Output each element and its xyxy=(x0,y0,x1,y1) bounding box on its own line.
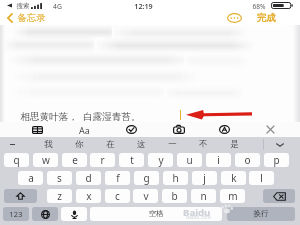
staticText: l xyxy=(260,171,263,185)
staticText: Aa xyxy=(79,124,90,136)
button[interactable]: p xyxy=(264,153,289,167)
button[interactable]: 我 xyxy=(34,137,62,152)
button[interactable]: t xyxy=(119,153,144,167)
button[interactable]: Expand candidates xyxy=(268,137,292,152)
staticText: 备忘录 xyxy=(17,12,46,24)
button[interactable]: 完成 xyxy=(256,11,277,25)
button[interactable]: Markup xyxy=(218,123,231,136)
button[interactable]: l xyxy=(249,171,274,185)
button[interactable]: v xyxy=(133,189,158,203)
button[interactable]: m xyxy=(220,189,245,203)
button[interactable]: Pinyin input xyxy=(6,137,18,152)
button[interactable]: More options xyxy=(226,12,242,24)
button[interactable]: g xyxy=(134,171,159,185)
button[interactable]: o xyxy=(235,153,260,167)
staticText: 12:19 xyxy=(134,1,153,11)
staticText: a xyxy=(28,171,34,185)
staticText: i xyxy=(217,153,220,167)
staticText: 相思黄叶落， 白露湿青苔。 xyxy=(20,110,141,123)
button[interactable]: x xyxy=(76,189,101,203)
button[interactable]: 123 xyxy=(3,207,29,221)
staticText: 搜索 xyxy=(16,2,30,10)
staticText: n xyxy=(200,189,207,203)
staticText: e xyxy=(72,153,78,167)
button[interactable]: 一 xyxy=(158,137,186,152)
button[interactable]: Table xyxy=(31,123,44,136)
button[interactable]: 不 xyxy=(189,137,217,152)
staticText: w xyxy=(42,153,50,167)
button[interactable]: i xyxy=(206,153,231,167)
staticText: g xyxy=(143,171,150,185)
staticText: b xyxy=(171,189,178,203)
button[interactable]: 备忘录 xyxy=(5,11,49,25)
staticText: p xyxy=(273,153,280,167)
button[interactable]: 空格 xyxy=(90,207,222,221)
button[interactable]: d xyxy=(76,171,101,185)
staticText: 完成 xyxy=(257,12,276,24)
button[interactable]: u xyxy=(177,153,202,167)
staticText: m xyxy=(228,189,238,203)
button[interactable]: 这 xyxy=(127,137,155,152)
button[interactable]: e xyxy=(62,153,87,167)
staticText: x xyxy=(86,189,92,203)
staticText: t xyxy=(130,153,134,167)
button[interactable]: s xyxy=(47,171,72,185)
button[interactable]: 是 xyxy=(220,137,248,152)
button[interactable]: Dictation xyxy=(61,207,87,221)
staticText: z xyxy=(57,189,62,203)
button[interactable]: z xyxy=(47,189,72,203)
button[interactable]: Backspace xyxy=(263,189,295,203)
button[interactable]: a xyxy=(18,171,43,185)
button[interactable]: y xyxy=(148,153,173,167)
button[interactable]: n xyxy=(191,189,216,203)
staticText: y xyxy=(158,153,164,167)
staticText: 这 xyxy=(137,139,146,150)
staticText: baidu.com xyxy=(186,214,211,221)
button[interactable]: 换行 xyxy=(227,207,295,221)
button[interactable]: Aa xyxy=(77,123,92,137)
staticText: 空格 xyxy=(148,209,164,219)
staticText: 我 xyxy=(44,139,53,150)
button[interactable]: w xyxy=(33,153,58,167)
staticText: c xyxy=(115,189,120,203)
button[interactable]: Camera xyxy=(172,123,185,136)
staticText: r xyxy=(100,153,105,167)
button[interactable]: c xyxy=(105,189,130,203)
staticText: 不 xyxy=(199,139,208,150)
staticText: 换行 xyxy=(253,209,269,219)
button[interactable]: 在 xyxy=(96,137,124,152)
button[interactable]: 你 xyxy=(65,137,93,152)
button[interactable]: j xyxy=(192,171,217,185)
staticText: j xyxy=(203,171,206,185)
button[interactable]: b xyxy=(162,189,187,203)
staticText: 4G xyxy=(53,2,62,11)
staticText: q xyxy=(13,153,20,167)
staticText: o xyxy=(244,153,251,167)
button[interactable]: q xyxy=(4,153,29,167)
staticText: k xyxy=(231,171,237,185)
button[interactable]: Shift xyxy=(4,189,37,203)
staticText: Baidu xyxy=(183,206,211,219)
staticText: 在 xyxy=(106,139,115,150)
staticText: u xyxy=(186,153,193,167)
button[interactable]: r xyxy=(90,153,115,167)
staticText: s xyxy=(57,171,62,185)
button[interactable]: Hide keyboard xyxy=(264,123,277,136)
staticText: d xyxy=(85,171,92,185)
button[interactable]: Checklist xyxy=(125,123,138,136)
staticText: 是 xyxy=(230,139,239,150)
staticText: 123 xyxy=(9,209,23,219)
staticText: v xyxy=(143,189,149,203)
staticText: h xyxy=(172,171,179,185)
staticText: 一 xyxy=(168,139,177,150)
button[interactable]: Switch keyboard xyxy=(32,207,58,221)
button[interactable]: h xyxy=(163,171,188,185)
staticText: 68% xyxy=(252,2,266,11)
staticText: 你 xyxy=(75,139,84,150)
button[interactable]: k xyxy=(221,171,246,185)
staticText: f xyxy=(116,171,120,185)
button[interactable]: f xyxy=(105,171,130,185)
